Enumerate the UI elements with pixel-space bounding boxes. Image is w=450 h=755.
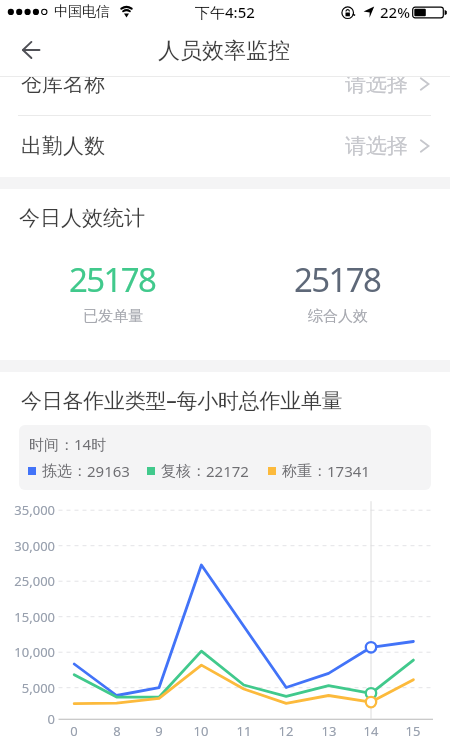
staticText: 中国电信 <box>54 3 110 21</box>
staticText: 11 <box>229 722 259 740</box>
staticText: 9 <box>144 722 174 740</box>
staticText: 请选择 <box>345 133 408 159</box>
staticText: 下午4:52 <box>195 2 255 22</box>
button[interactable]: 出勤人数 <box>0 115 450 177</box>
staticText: 12 <box>271 722 301 740</box>
staticText: 复核： <box>161 462 206 481</box>
staticText: 25178 <box>69 257 156 302</box>
staticText: 13 <box>314 722 344 740</box>
staticText: 30,000 <box>0 537 55 555</box>
staticText: 人员效率监控 <box>158 37 290 65</box>
staticText: 今日各作业类型–每小时总作业单量 <box>21 386 343 415</box>
button[interactable]: 仓库名称 <box>0 77 450 115</box>
staticText: 称重： <box>282 462 327 481</box>
staticText: 14 <box>356 722 386 740</box>
staticText: 出勤人数 <box>21 133 105 159</box>
staticText: 拣选： <box>42 462 87 481</box>
staticText: 25178 <box>294 257 381 302</box>
staticText: 29163 <box>87 461 130 481</box>
staticText: 22% <box>380 2 410 22</box>
staticText: 10,000 <box>0 643 55 661</box>
staticText: 今日人效统计 <box>19 205 145 231</box>
staticText: 5,000 <box>0 679 55 697</box>
staticText: 8 <box>102 722 132 740</box>
staticText: 22172 <box>206 461 249 481</box>
staticText: 请选择 <box>345 77 408 97</box>
staticText: 25,000 <box>0 572 55 590</box>
staticText: 0 <box>59 722 89 740</box>
staticText: 仓库名称 <box>21 77 105 97</box>
staticText: 10 <box>186 722 216 740</box>
staticText: 17341 <box>327 461 370 481</box>
staticText: 0 <box>0 710 55 728</box>
staticText: 15,000 <box>0 608 55 626</box>
staticText: 已发单量 <box>83 307 143 326</box>
staticText: 15 <box>398 722 428 740</box>
staticText: 综合人效 <box>308 307 368 326</box>
staticText: 35,000 <box>0 501 55 519</box>
staticText: 时间：14时 <box>29 434 107 454</box>
button[interactable]: Back <box>8 28 54 74</box>
